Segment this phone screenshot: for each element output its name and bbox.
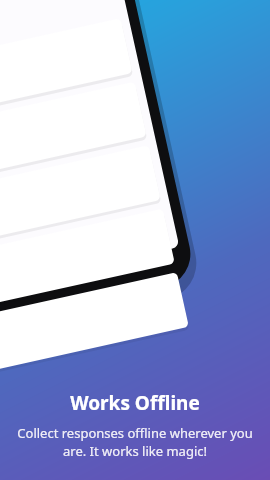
staticText: Works Offline	[12, 390, 258, 416]
other: Phone showing offline form list	[0, 0, 270, 480]
staticText: Collect responses offline wherever you a…	[12, 424, 258, 460]
button[interactable]: Works Offline	[12, 390, 258, 460]
